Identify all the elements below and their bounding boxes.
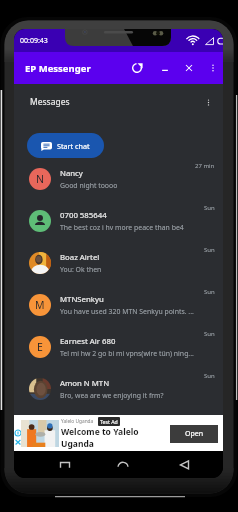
button[interactable]: Minimize [153, 52, 177, 84]
staticText: MTNSenkyu [60, 294, 104, 305]
staticText: M [35, 298, 45, 312]
staticText: N [36, 172, 44, 186]
button[interactable]: N [14, 158, 223, 200]
staticText: Sun [204, 372, 215, 380]
staticText: Messages [30, 96, 70, 108]
button[interactable]: Boaz Airtel [14, 242, 223, 284]
button[interactable]: More options [197, 91, 219, 113]
staticText: 00:09:43 [20, 36, 48, 46]
staticText: Bro, wea are we enjoying it frm? [60, 391, 164, 400]
button[interactable]: Amon N MTN [14, 368, 223, 410]
staticText: 27 min [195, 162, 215, 170]
staticText: The best coz i hv more peace than be4 [60, 223, 184, 232]
button[interactable]: Back [172, 451, 198, 478]
button[interactable]: More options [203, 52, 223, 84]
staticText: EP Messenger [25, 62, 91, 75]
staticText: 0700 585644 [60, 210, 107, 221]
staticText: Sun [204, 330, 215, 338]
button[interactable]: Close [177, 52, 201, 84]
staticText: Nancy [60, 168, 83, 179]
staticText: Open [185, 429, 204, 439]
button[interactable]: E [14, 326, 223, 368]
staticText: Uganda [61, 438, 94, 450]
button[interactable]: Yalelo Uganda [14, 415, 223, 451]
staticText: You: Ok then [60, 265, 102, 274]
button[interactable]: Home [110, 451, 136, 478]
button[interactable]: Start chat [27, 133, 104, 158]
staticText: Good night toooo [60, 181, 118, 190]
staticText: You have used 320 MTN Senkyu points. ... [60, 307, 194, 316]
staticText: Test Ad [100, 418, 118, 425]
staticText: E [37, 340, 43, 354]
staticText: Sun [204, 204, 215, 212]
staticText: Sun [204, 246, 215, 254]
staticText: Amon N MTN [60, 378, 110, 389]
staticText: Yalelo Uganda [61, 418, 94, 425]
button[interactable]: Recent apps [52, 451, 78, 478]
staticText: Welcome to Yalelo [61, 426, 139, 438]
staticText: Start chat [57, 141, 90, 151]
staticText: Tel mi hw 2 go bi mi vpns(wire tün) ning… [60, 349, 194, 358]
button[interactable]: M [14, 284, 223, 326]
button[interactable]: Refresh [124, 52, 149, 84]
staticText: Earnest Air 680 [60, 336, 116, 347]
staticText: Boaz Airtel [60, 252, 100, 263]
button[interactable]: 0700 585644 [14, 200, 223, 242]
button[interactable]: Open [170, 425, 218, 443]
staticText: Sun [204, 288, 215, 296]
